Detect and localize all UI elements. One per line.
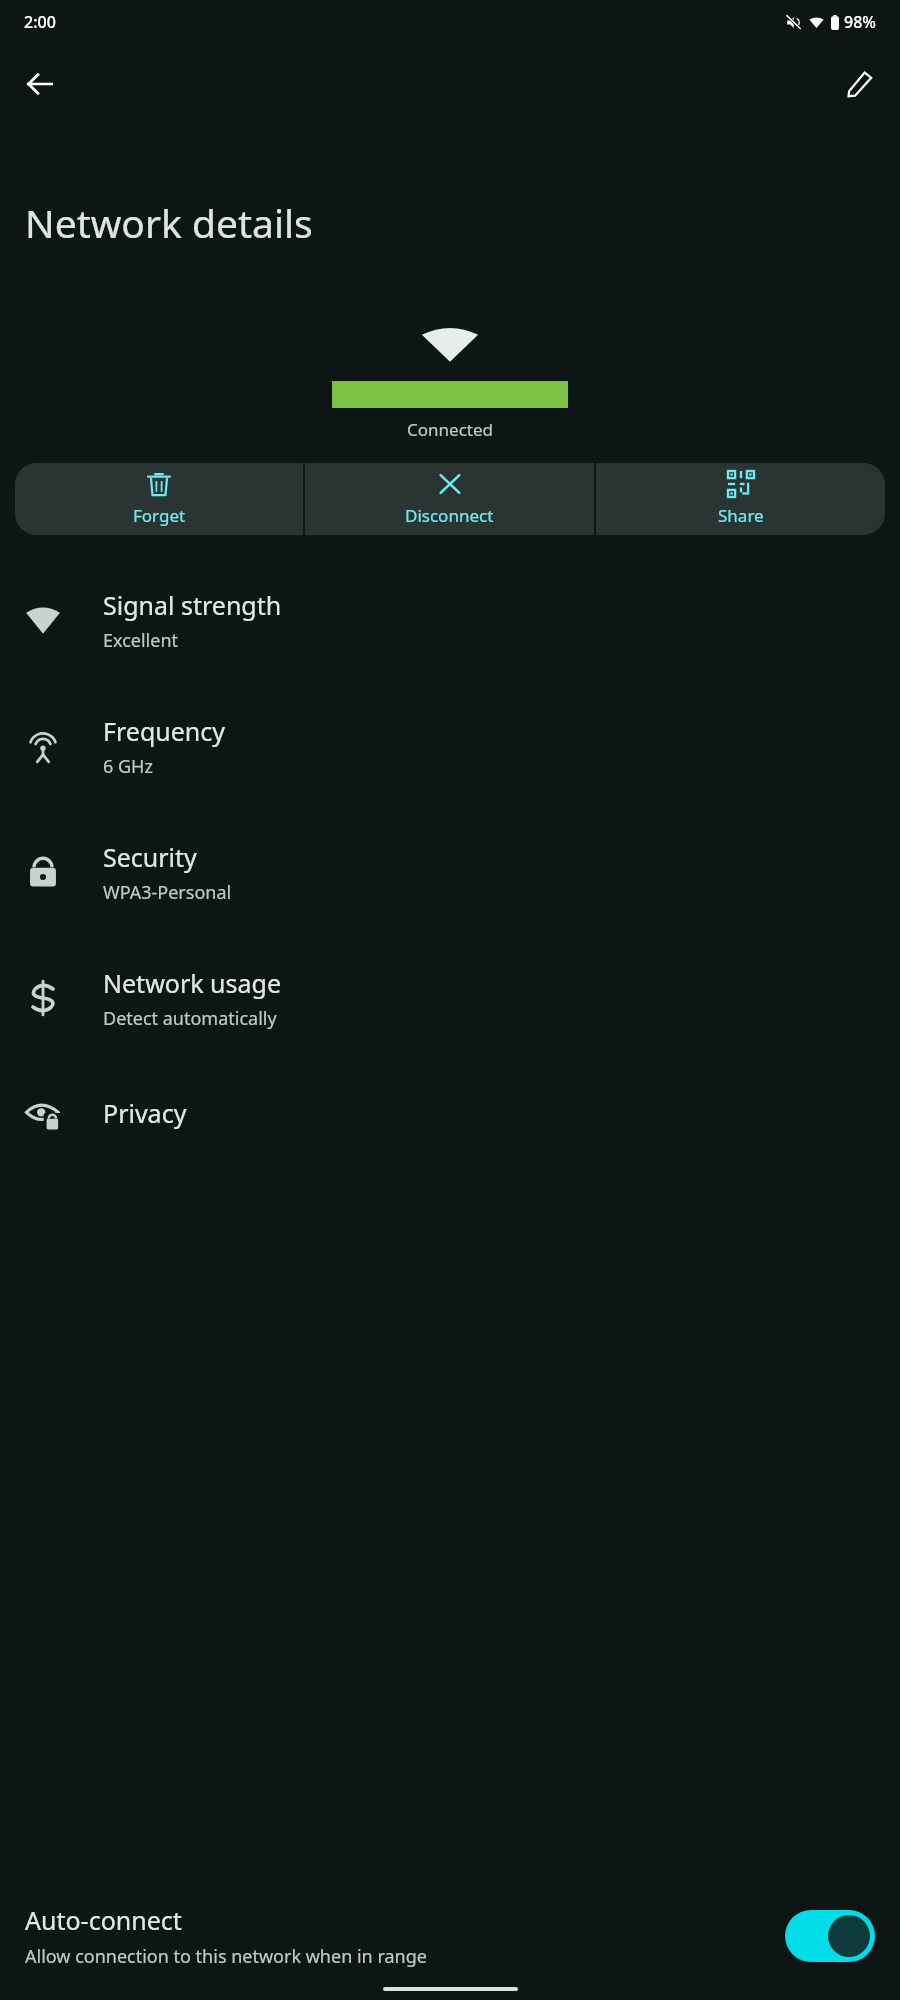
button[interactable]: Signal strength xyxy=(0,557,900,683)
button[interactable]: Forget xyxy=(15,463,303,535)
staticText: Excellent xyxy=(103,628,179,653)
staticText: 2:00 xyxy=(24,11,56,33)
button[interactable]: Privacy xyxy=(0,1061,900,1165)
staticText: 98% xyxy=(844,11,876,33)
button[interactable]: Back xyxy=(12,56,68,112)
staticText: Network details xyxy=(25,196,313,249)
staticText: Frequency xyxy=(103,714,226,748)
button[interactable]: Disconnect xyxy=(305,463,594,535)
button[interactable] xyxy=(785,1910,875,1962)
button[interactable]: Auto-connect xyxy=(0,1903,900,1969)
button[interactable]: Frequency xyxy=(0,683,900,809)
staticText: Signal strength xyxy=(103,588,282,622)
button[interactable]: Edit xyxy=(832,56,888,112)
staticText: Connected xyxy=(407,418,493,441)
staticText: Disconnect xyxy=(405,504,494,527)
button[interactable]: Network usage xyxy=(0,935,900,1061)
staticText: 6 GHz xyxy=(103,754,153,779)
staticText: WPA3-Personal xyxy=(103,880,232,905)
staticText: Detect automatically xyxy=(103,1006,277,1031)
staticText: Auto-connect xyxy=(25,1903,182,1937)
staticText: Allow connection to this network when in… xyxy=(25,1944,427,1969)
button[interactable]: Security xyxy=(0,809,900,935)
button[interactable]: Share xyxy=(596,463,885,535)
staticText: Security xyxy=(103,840,197,874)
staticText: Forget xyxy=(133,504,186,527)
staticText: Privacy xyxy=(103,1096,187,1130)
staticText: Share xyxy=(718,504,764,527)
staticText: Network usage xyxy=(103,966,282,1000)
